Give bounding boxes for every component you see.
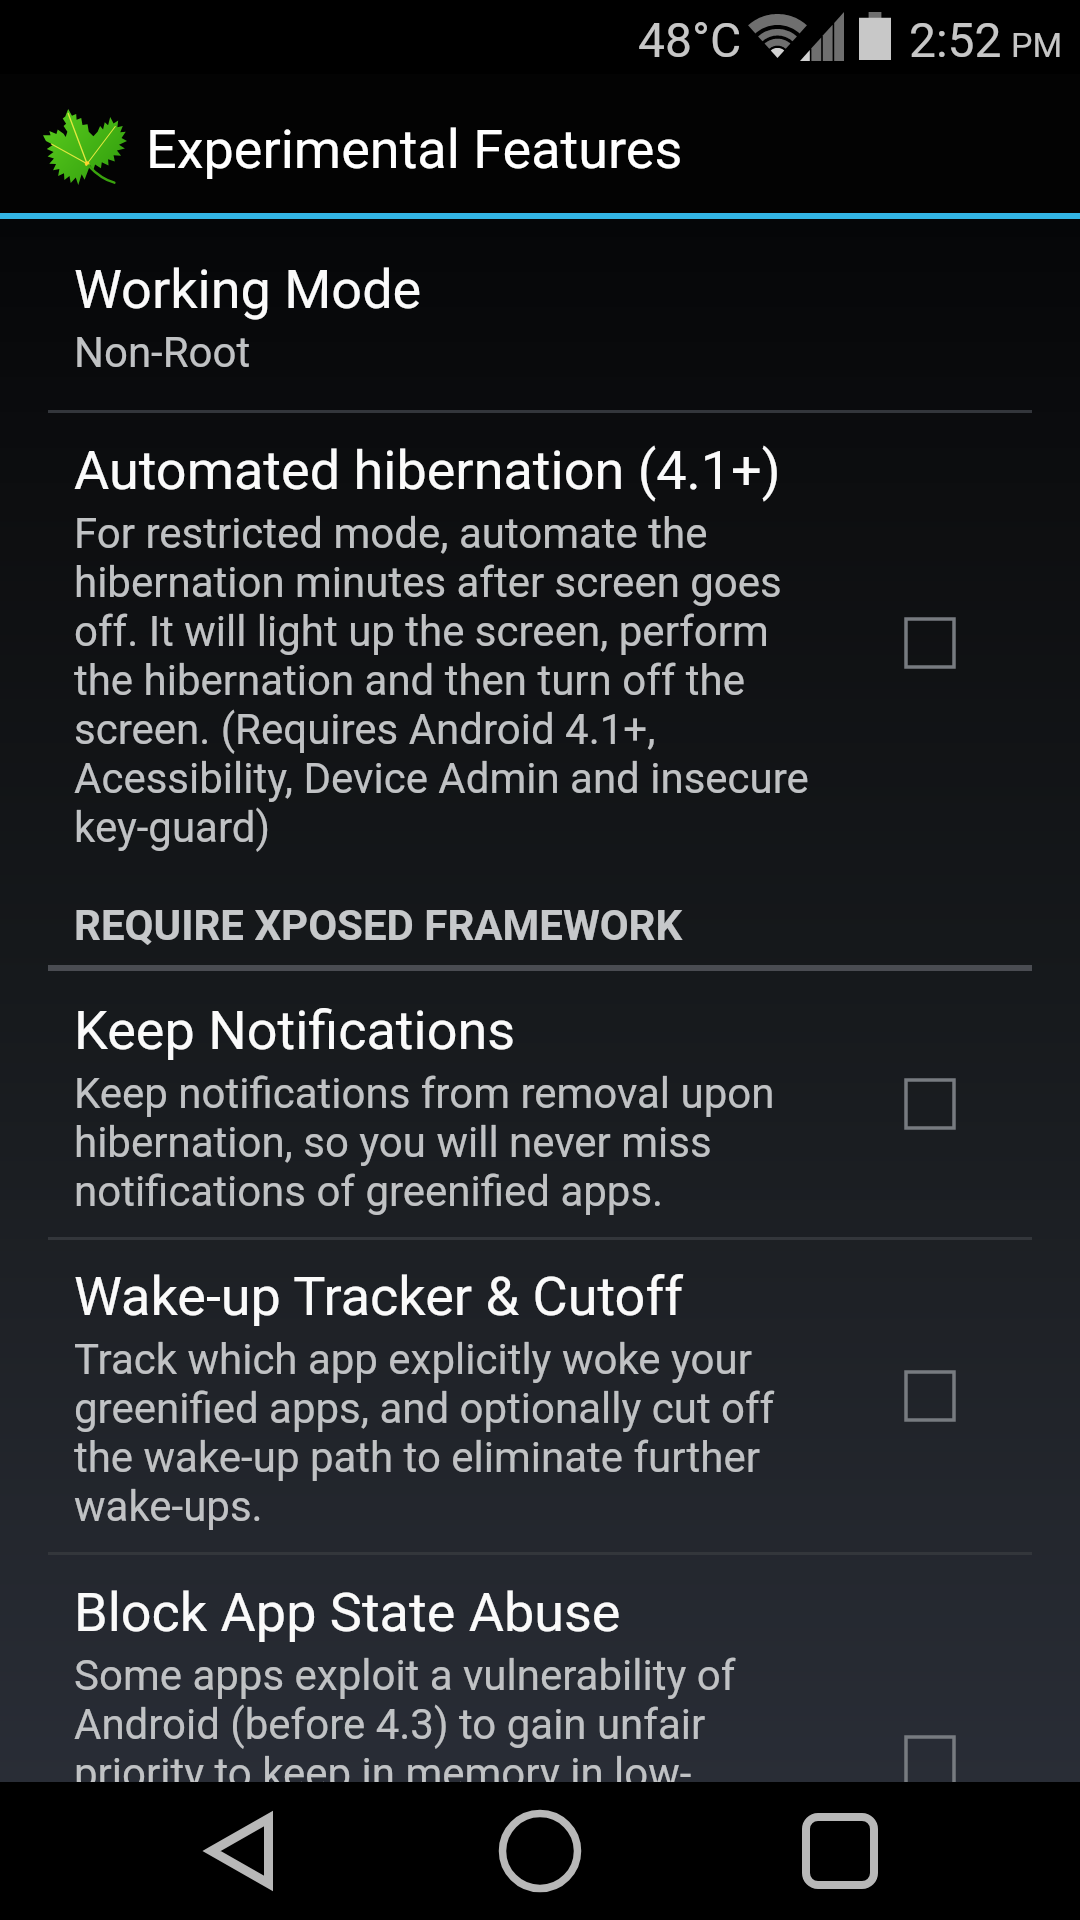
staticText: REQUIRE XPOSED FRAMEWORK: [74, 901, 683, 950]
staticText: 2:52: [909, 12, 1002, 68]
staticText: Wake-up Tracker & Cutoff: [74, 1265, 683, 1328]
button[interactable]: Automated hibernation (4.1+): [906, 619, 954, 667]
button[interactable]: Recent apps: [771, 1782, 909, 1920]
button[interactable]: Back: [171, 1782, 309, 1920]
staticText: Keep Notifications: [74, 999, 516, 1062]
staticText: PM: [1011, 25, 1063, 65]
staticText: For restricted mode, automate the hibern…: [74, 509, 822, 852]
staticText: 48°C: [638, 12, 742, 68]
staticText: Track which app explicitly woke your gre…: [74, 1335, 822, 1531]
staticText: Working Mode: [74, 258, 422, 321]
staticText: Automated hibernation (4.1+): [74, 439, 781, 502]
button[interactable]: Keep Notifications: [0, 971, 1080, 1237]
button[interactable]: Block App State Abuse: [906, 1737, 954, 1785]
staticText: Some apps exploit a vulnerability of And…: [74, 1651, 822, 1920]
button[interactable]: Keep Notifications: [906, 1080, 954, 1128]
button[interactable]: Block App State Abuse: [0, 1555, 1080, 1920]
button[interactable]: Wake-up Tracker & Cutoff: [0, 1240, 1080, 1552]
staticText: Keep notifications from removal upon hib…: [74, 1069, 822, 1216]
staticText: Non-Root: [74, 328, 251, 377]
button[interactable]: Home: [471, 1782, 609, 1920]
button[interactable]: Automated hibernation (4.1+): [0, 413, 1080, 872]
staticText: Experimental Features: [146, 118, 683, 181]
button[interactable]: Working Mode: [0, 219, 1080, 410]
button[interactable]: Wake-up Tracker & Cutoff: [906, 1372, 954, 1420]
staticText: Block App State Abuse: [74, 1581, 621, 1644]
